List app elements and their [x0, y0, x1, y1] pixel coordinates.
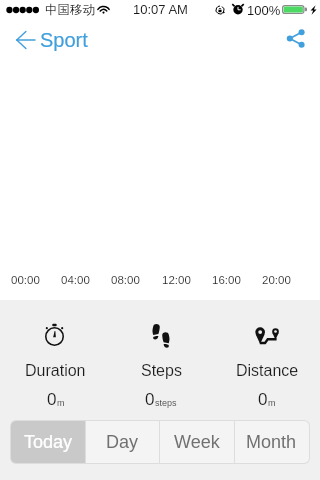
staticText: Day: [106, 432, 139, 452]
staticText: Sport: [40, 29, 88, 51]
staticText: 00:00: [11, 274, 40, 287]
staticText: Month: [246, 432, 297, 452]
staticText: m: [268, 398, 276, 408]
staticText: 0: [258, 390, 268, 409]
staticText: 16:00: [212, 274, 241, 287]
staticText: Duration: [25, 362, 86, 380]
button[interactable]: Today: [11, 421, 85, 463]
staticText: Distance: [236, 362, 299, 380]
staticText: 20:00: [262, 274, 291, 287]
staticText: Week: [174, 432, 220, 452]
button[interactable]: Duration: [3, 320, 108, 411]
button[interactable]: Day: [85, 421, 159, 463]
button[interactable]: Month: [234, 421, 309, 463]
staticText: 10:07 AM: [133, 2, 188, 17]
staticText: 100%: [247, 3, 281, 18]
staticText: steps: [155, 398, 177, 408]
button[interactable]: Sport: [0, 26, 96, 56]
staticText: 08:00: [111, 274, 140, 287]
button[interactable]: Steps: [108, 320, 214, 411]
staticText: 0: [145, 390, 155, 409]
staticText: Steps: [141, 362, 182, 380]
staticText: Today: [24, 432, 73, 452]
staticText: m: [57, 398, 65, 408]
staticText: 中国移动: [45, 2, 95, 18]
staticText: 12:00: [162, 274, 191, 287]
staticText: 04:00: [61, 274, 90, 287]
staticText: 0: [47, 390, 57, 409]
button[interactable]: Distance: [214, 320, 320, 411]
button[interactable]: Share: [278, 21, 312, 55]
button[interactable]: Week: [159, 421, 234, 463]
